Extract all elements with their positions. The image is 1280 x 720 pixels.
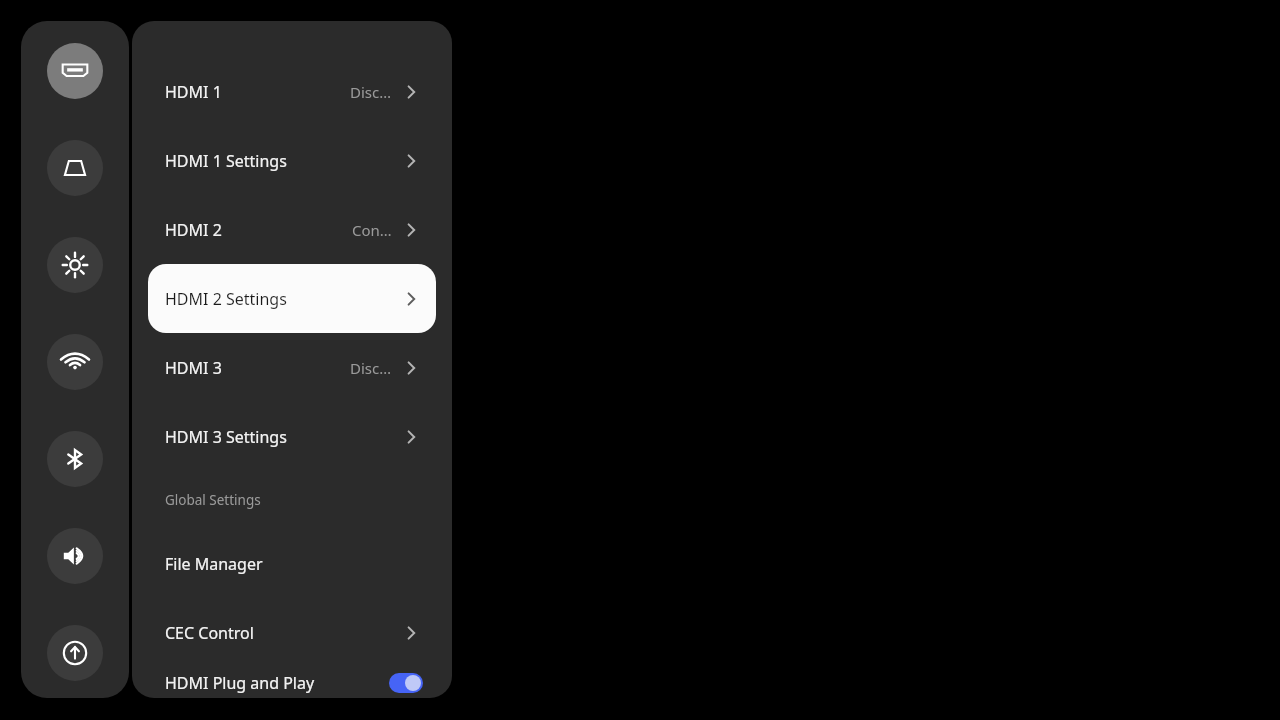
staticText: CEC Control — [165, 622, 401, 644]
staticText: HDMI Plug and Play — [165, 672, 389, 694]
button[interactable]: Brightness — [47, 237, 103, 293]
staticText: Disc… — [350, 82, 392, 102]
button[interactable]: CEC Control — [132, 598, 452, 667]
staticText: Global Settings — [165, 491, 261, 509]
staticText: HDMI 3 Settings — [165, 426, 401, 448]
button[interactable]: HDMI inputs — [47, 43, 103, 99]
button[interactable]: Wi-Fi — [47, 334, 103, 390]
staticText: Con… — [352, 220, 392, 240]
staticText: HDMI 3 — [165, 357, 350, 379]
staticText: File Manager — [165, 553, 421, 575]
button[interactable]: HDMI 2 Settings — [148, 264, 436, 333]
button[interactable]: HDMI 2 — [132, 195, 452, 264]
button[interactable]: HDMI Plug and Play — [132, 667, 452, 698]
staticText: Disc… — [350, 358, 392, 378]
button[interactable]: Volume — [47, 528, 103, 584]
button[interactable]: File Manager — [132, 529, 452, 598]
button[interactable]: Picture — [47, 140, 103, 196]
staticText: HDMI 2 Settings — [165, 288, 401, 310]
button[interactable]: HDMI 3 Settings — [132, 402, 452, 471]
button[interactable]: Bluetooth — [47, 431, 103, 487]
button[interactable]: System update — [47, 625, 103, 681]
staticText: HDMI 1 Settings — [165, 150, 401, 172]
staticText: HDMI 2 — [165, 219, 352, 241]
button[interactable]: HDMI 1 — [132, 57, 452, 126]
button[interactable]: HDMI 1 Settings — [132, 126, 452, 195]
staticText: HDMI 1 — [165, 81, 350, 103]
button[interactable]: HDMI 3 — [132, 333, 452, 402]
